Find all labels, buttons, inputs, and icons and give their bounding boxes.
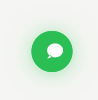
button[interactable]: Messages (31, 31, 72, 72)
